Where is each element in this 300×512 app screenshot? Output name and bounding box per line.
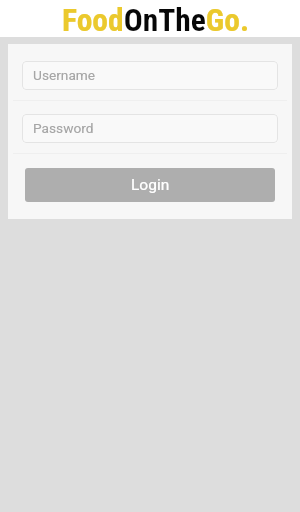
staticText: Password: [33, 120, 94, 136]
button[interactable]: Username: [22, 61, 278, 90]
staticText: FoodOnTheGo.: [62, 2, 250, 39]
staticText: Username: [33, 67, 96, 83]
staticText: Login: [131, 176, 170, 194]
button[interactable]: Password: [22, 114, 278, 143]
button[interactable]: Login: [25, 168, 275, 202]
